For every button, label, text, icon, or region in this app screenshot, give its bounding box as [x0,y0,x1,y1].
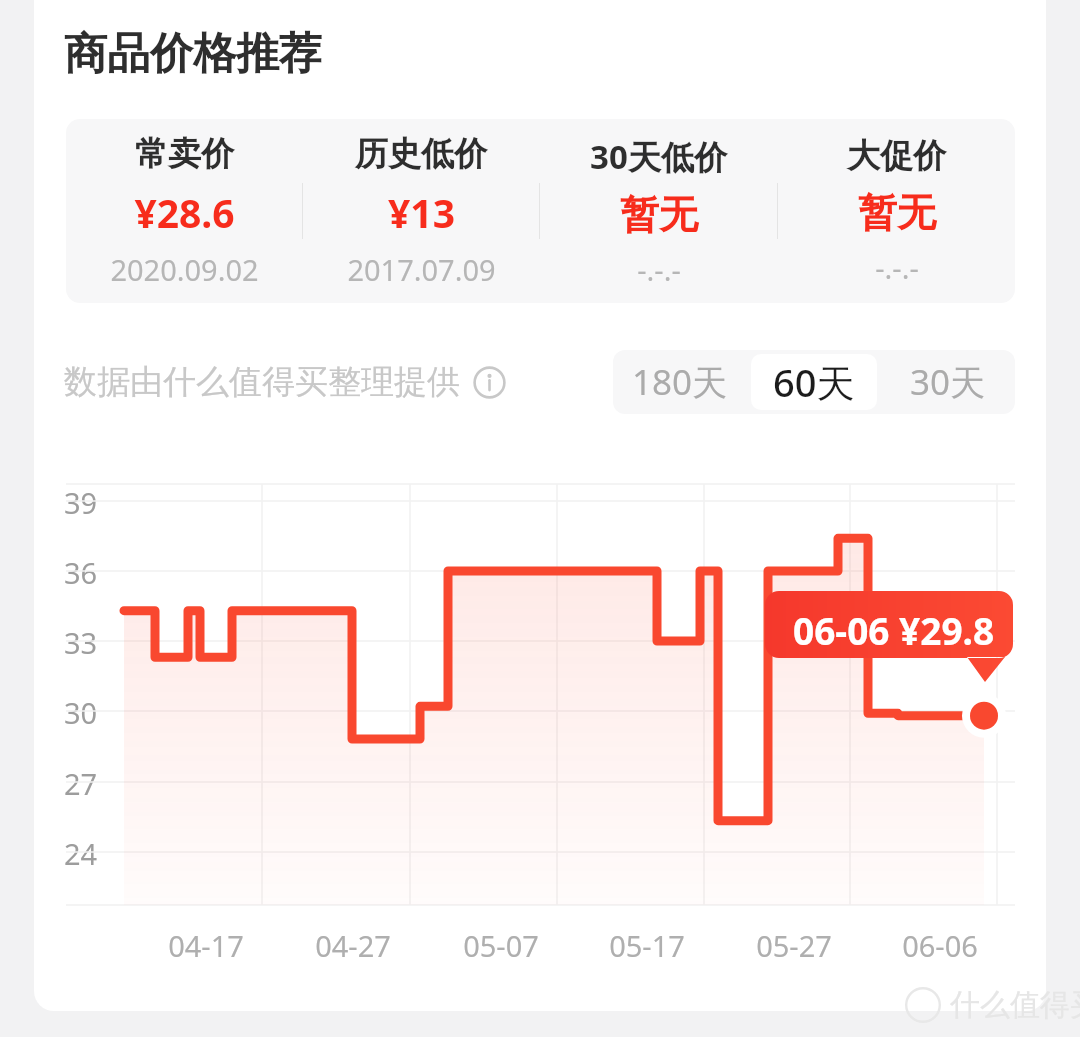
staticText: 2020.09.02 [110,250,259,289]
staticText: 商品价格推荐 [64,27,322,81]
staticText: 历史低价 [355,133,487,175]
staticText: 什么值得买 [950,986,1080,1024]
button[interactable]: 30天 [885,354,1011,410]
staticText: 180天 [632,358,728,406]
staticText: 大促价 [847,135,946,177]
staticText: -.-.- [875,248,919,287]
button[interactable]: 大促价 [778,119,1015,303]
staticText: 05-27 [756,926,832,965]
staticText: 30 [64,693,98,732]
staticText: 24 [64,834,98,873]
staticText: 05-07 [463,926,539,965]
button[interactable]: 数据说明 [473,366,506,399]
staticText: 04-27 [315,926,391,965]
staticText: 39 [64,483,98,522]
staticText: 36 [64,553,98,592]
button[interactable]: 30天低价 [540,119,777,303]
staticText: 06-06 [902,926,978,965]
staticText: 数据由什么值得买整理提供 [64,361,460,403]
staticText: 2017.07.09 [347,250,496,289]
staticText: 暂无 [858,188,936,237]
staticText: 暂无 [620,190,698,239]
staticText: 05-17 [609,926,685,965]
staticText: 30天低价 [590,134,727,179]
staticText: 04-17 [168,926,244,965]
button[interactable]: 60天 [751,354,877,410]
staticText: ¥13 [388,186,455,239]
button[interactable]: 数据由什么值得买整理提供 [64,350,506,414]
staticText: 27 [64,764,98,803]
button[interactable]: 常卖价 [66,119,302,303]
staticText: -.-.- [637,250,681,289]
button[interactable]: 历史低价 [303,119,539,303]
staticText: 30天 [910,358,986,406]
staticText: 06-06 ¥29.8 [793,605,995,655]
button[interactable]: 180天 [617,354,743,410]
staticText: 常卖价 [135,133,234,175]
staticText: ¥28.6 [134,186,235,239]
staticText: 60天 [773,356,855,408]
staticText: 33 [64,623,98,662]
